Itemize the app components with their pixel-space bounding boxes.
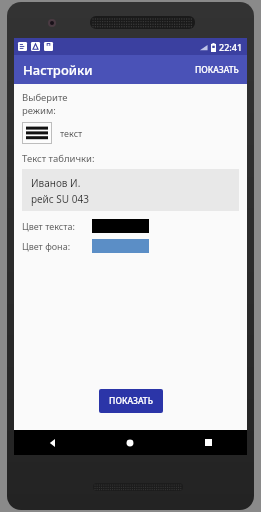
staticText: 22:41 — [219, 41, 243, 53]
staticText: Цвет текста: — [22, 220, 75, 232]
button[interactable]: Иванов И. — [22, 169, 239, 211]
button[interactable]: ПОКАЗАТЬ — [187, 58, 247, 82]
staticText: Выберите — [22, 91, 68, 104]
staticText: рейс SU 043 — [31, 192, 89, 206]
button[interactable]: ПОКАЗАТЬ — [99, 389, 163, 413]
staticText: Настройки — [23, 61, 93, 79]
staticText: Цвет фона: — [22, 240, 71, 252]
button[interactable]: Домой — [91, 430, 169, 455]
staticText: текст — [60, 127, 83, 139]
staticText: Текст таблички: — [22, 152, 95, 165]
staticText: Иванов И. — [31, 176, 81, 190]
button[interactable]: Режим: текст — [22, 122, 52, 144]
staticText: режим: — [22, 104, 56, 117]
button[interactable]: Последние приложения — [169, 430, 247, 455]
staticText: ПОКАЗАТЬ — [109, 395, 153, 407]
button[interactable]: Назад — [14, 430, 91, 455]
staticText: ПОКАЗАТЬ — [195, 64, 239, 76]
